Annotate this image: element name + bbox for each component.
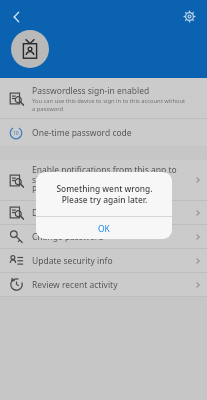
button[interactable]: Back xyxy=(4,4,30,30)
staticText: Something went wrong. Please try again l… xyxy=(56,183,153,205)
button[interactable]: Update security info xyxy=(0,249,207,272)
button[interactable]: Profile xyxy=(11,30,49,68)
staticText: Enable notifications from this app to si… xyxy=(32,164,189,196)
button[interactable]: Disable xyxy=(0,201,207,224)
staticText: Passwordless sign-in enabled xyxy=(32,85,150,97)
staticText: Review recent activity xyxy=(32,279,118,291)
staticText: You can use this device to sign in to th… xyxy=(32,97,189,112)
staticText: One-time password code xyxy=(32,127,132,139)
button[interactable]: Passwordless sign-in enabled xyxy=(0,78,207,118)
button[interactable]: Change password xyxy=(0,225,207,248)
staticText: Update security info xyxy=(32,255,113,267)
button[interactable]: OK xyxy=(36,217,172,239)
button[interactable]: Review recent activity xyxy=(0,273,207,296)
staticText: Disable xyxy=(32,207,62,219)
button[interactable]: 10 xyxy=(0,119,207,146)
staticText: OK xyxy=(98,223,110,234)
staticText: Change password xyxy=(32,231,104,243)
button[interactable]: Settings xyxy=(177,4,201,28)
button[interactable]: Enable notifications from this app to si… xyxy=(0,160,207,200)
staticText: 10 xyxy=(13,130,19,137)
